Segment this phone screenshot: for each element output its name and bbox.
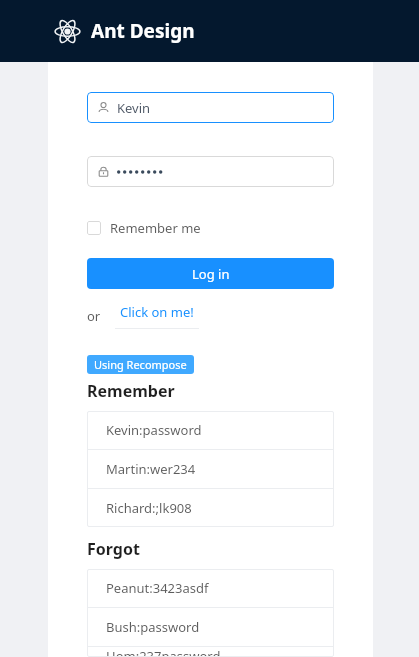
button[interactable] <box>87 156 334 187</box>
staticText: Peanut:3423asdf <box>106 579 209 597</box>
staticText: Remember <box>87 380 175 402</box>
staticText: Bush:password <box>106 618 200 636</box>
button[interactable]: Peanut:3423asdf <box>87 569 334 607</box>
staticText: or <box>87 307 101 325</box>
button[interactable]: Richard:;lk908 <box>87 489 334 527</box>
staticText: Click on me! <box>120 303 194 321</box>
staticText: Remember me <box>110 219 201 237</box>
staticText: Forgot <box>87 538 140 560</box>
button[interactable]: Kevin:password <box>87 411 334 449</box>
staticText: Using Recompose <box>94 357 187 372</box>
staticText: Ant Design <box>91 18 195 44</box>
staticText: Richard:;lk908 <box>106 499 192 517</box>
button[interactable]: Log in <box>87 258 334 289</box>
staticText: Kevin <box>117 99 151 117</box>
button[interactable]: Martin:wer234 <box>87 450 334 488</box>
button[interactable]: Click on me! <box>115 303 199 329</box>
button[interactable]: Remember me <box>87 219 201 237</box>
button[interactable]: Hom:237password <box>87 647 334 657</box>
staticText: Hom:237password <box>106 647 221 657</box>
button[interactable]: Kevin <box>87 92 334 123</box>
staticText: Kevin:password <box>106 421 202 439</box>
staticText: Log in <box>192 265 230 283</box>
button[interactable]: Using Recompose <box>87 355 194 374</box>
staticText: Martin:wer234 <box>106 460 196 478</box>
button[interactable]: Bush:password <box>87 608 334 646</box>
